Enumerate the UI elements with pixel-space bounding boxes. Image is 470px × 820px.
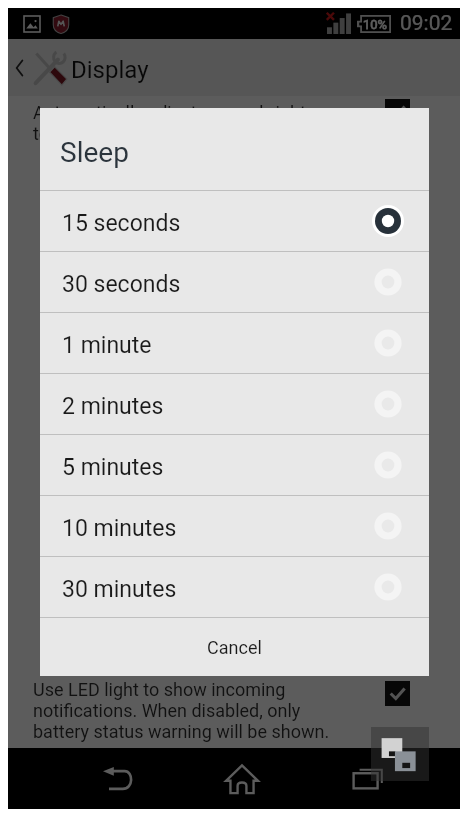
button[interactable]: Checkbox, checked: [385, 99, 410, 124]
staticText: 1 minute: [62, 332, 371, 359]
staticText: Sleep: [60, 136, 129, 169]
staticText: 5 minutes: [62, 454, 371, 481]
staticText: Cancel: [207, 637, 262, 658]
button[interactable]: 30 seconds: [40, 252, 429, 312]
staticText: 30 minutes: [62, 576, 371, 603]
staticText: 09:02: [400, 11, 453, 36]
button[interactable]: Navigate up: [9, 46, 29, 90]
staticText: 2 minutes: [62, 393, 371, 420]
button[interactable]: 30 minutes: [40, 557, 429, 617]
button[interactable]: Cancel: [40, 618, 429, 676]
staticText: Use LED light to show incoming notificat…: [33, 679, 353, 742]
button[interactable]: 1 minute: [40, 313, 429, 373]
button[interactable]: 15 seconds: [40, 191, 429, 251]
staticText: Automatically adjust screen brightness t…: [33, 102, 353, 144]
button[interactable]: Recent apps: [336, 748, 400, 809]
staticText: 30 seconds: [62, 271, 371, 298]
staticText: 10 minutes: [62, 515, 371, 542]
staticText: 10%: [363, 17, 388, 32]
button[interactable]: Small apps: [371, 727, 429, 781]
button[interactable]: Back: [86, 748, 150, 809]
button[interactable]: Checkbox, checked: [385, 681, 410, 706]
staticText: Display: [71, 56, 149, 84]
button[interactable]: 5 minutes: [40, 435, 429, 495]
button[interactable]: 2 minutes: [40, 374, 429, 434]
button[interactable]: 10 minutes: [40, 496, 429, 556]
button[interactable]: Home: [210, 748, 274, 809]
staticText: 15 seconds: [62, 210, 371, 237]
